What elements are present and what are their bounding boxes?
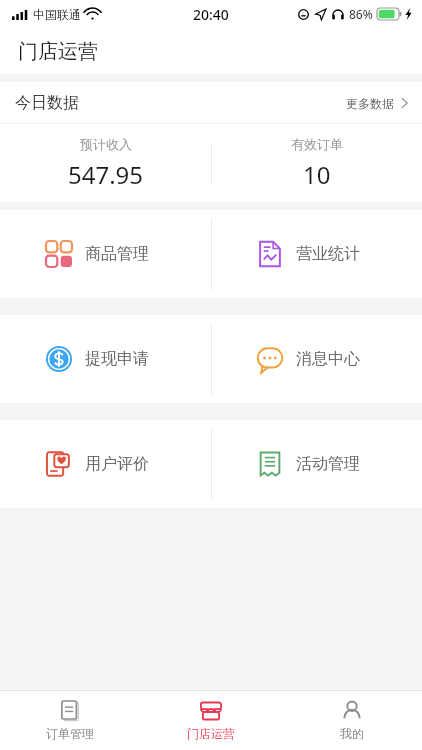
staticText: 商品管理 bbox=[85, 244, 149, 264]
staticText: 营业统计 bbox=[296, 244, 360, 264]
button[interactable]: 活动管理 bbox=[211, 420, 422, 508]
staticText: 预计收入 bbox=[80, 136, 132, 152]
staticText: 我的 bbox=[340, 726, 364, 741]
button[interactable]: 更多数据 bbox=[332, 82, 422, 124]
button[interactable]: 商品管理 bbox=[0, 210, 211, 298]
staticText: 门店运营 bbox=[187, 726, 235, 741]
button[interactable]: 订单管理 bbox=[0, 690, 140, 750]
button[interactable]: 消息中心 bbox=[211, 315, 422, 403]
button[interactable]: 门店运营 bbox=[140, 690, 281, 750]
staticText: 订单管理 bbox=[46, 726, 94, 741]
staticText: 门店运营 bbox=[18, 39, 98, 64]
staticText: 今日数据 bbox=[15, 93, 79, 113]
button[interactable]: 我的 bbox=[281, 690, 422, 750]
staticText: 提现申请 bbox=[85, 349, 149, 369]
staticText: 更多数据 bbox=[346, 96, 394, 111]
button[interactable]: 营业统计 bbox=[211, 210, 422, 298]
staticText: 用户评价 bbox=[85, 454, 149, 474]
staticText: 活动管理 bbox=[296, 454, 360, 474]
staticText: 消息中心 bbox=[296, 349, 360, 369]
button[interactable]: 用户评价 bbox=[0, 420, 211, 508]
staticText: 86% bbox=[349, 6, 373, 22]
staticText: 有效订单 bbox=[291, 136, 343, 152]
staticText: 10 bbox=[303, 158, 331, 191]
staticText: 20:40 bbox=[193, 5, 229, 24]
staticText: 547.95 bbox=[68, 158, 144, 191]
button[interactable]: 提现申请 bbox=[0, 315, 211, 403]
staticText: 中国联通 bbox=[33, 7, 81, 22]
